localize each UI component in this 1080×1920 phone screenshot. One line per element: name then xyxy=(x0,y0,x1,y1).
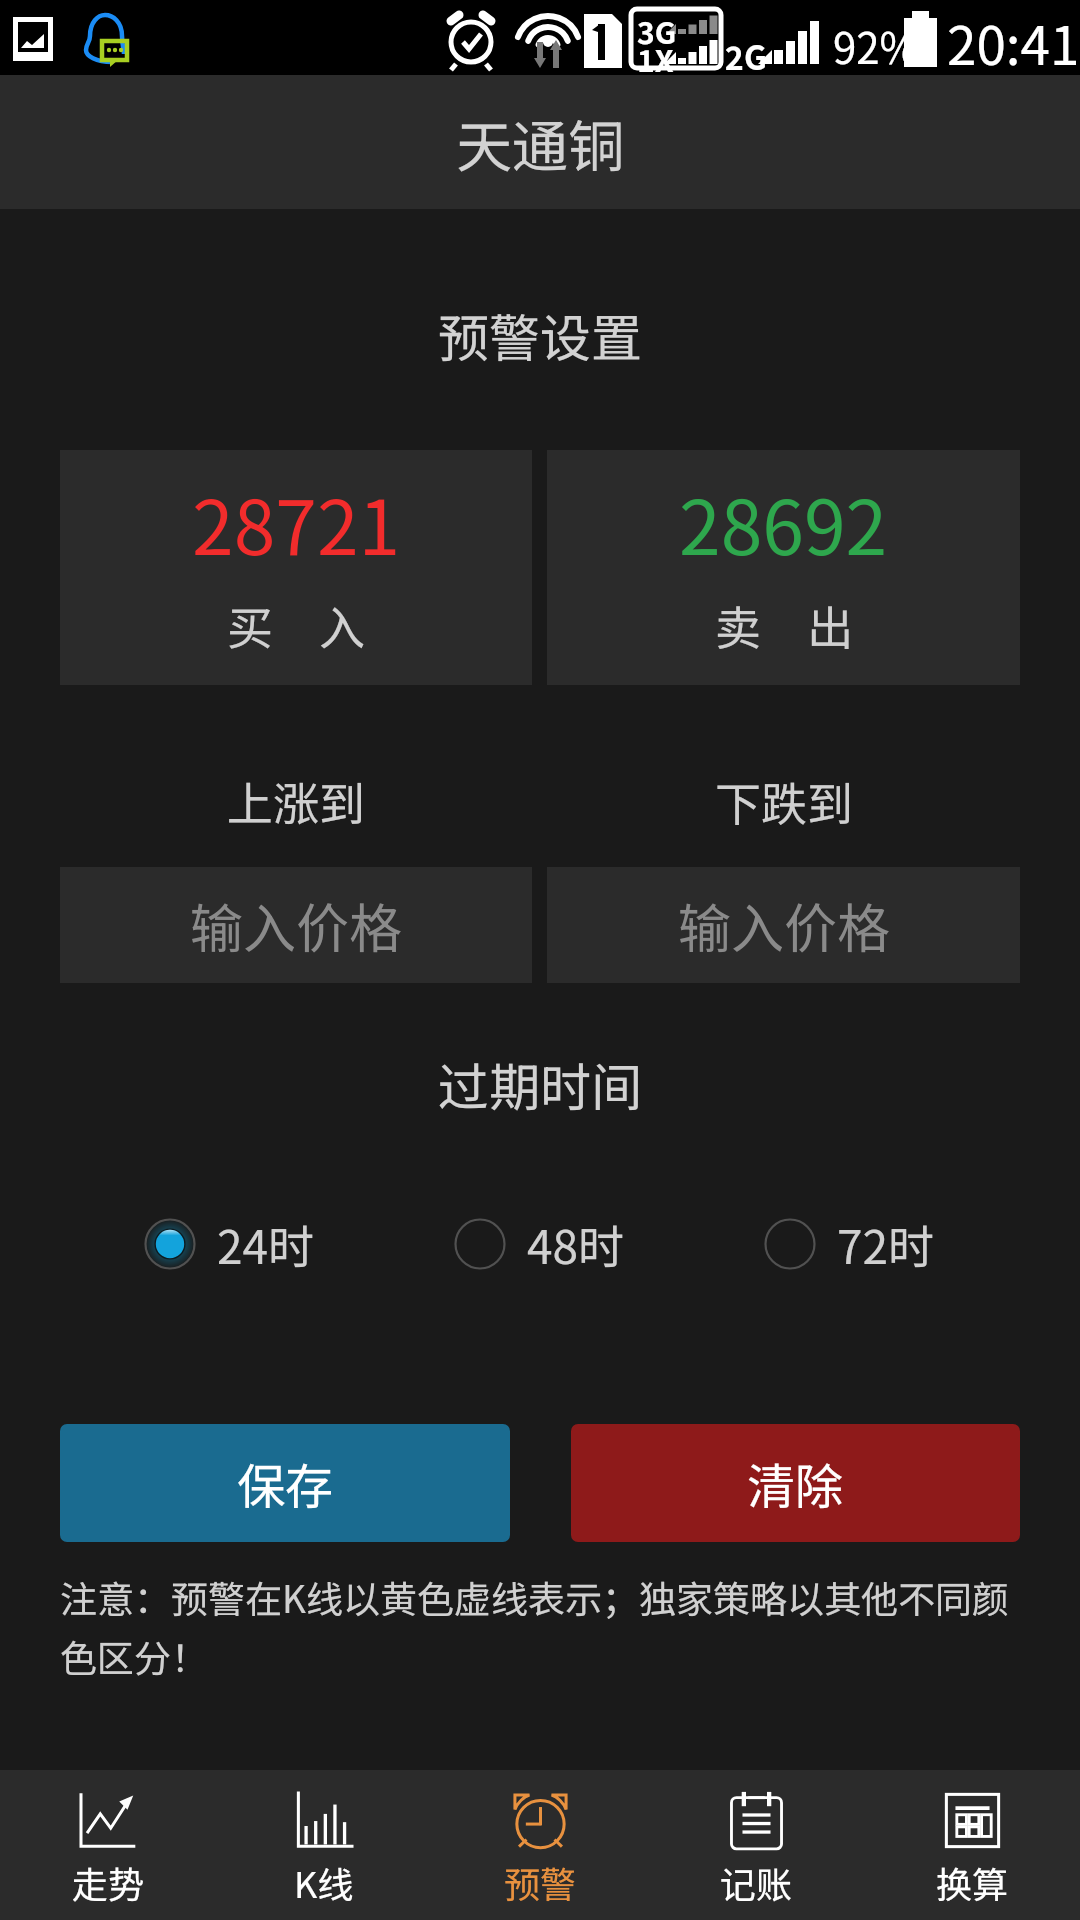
button[interactable]: 清除 xyxy=(571,1424,1020,1542)
staticText: 1X xyxy=(637,37,674,80)
staticText: 3G xyxy=(637,9,677,52)
staticText: 换算 xyxy=(936,1856,1009,1908)
button[interactable]: 输入价格 xyxy=(547,867,1020,983)
staticText: 上涨到 xyxy=(227,768,365,835)
staticText: 72时 xyxy=(837,1211,935,1278)
staticText: 天通铜 xyxy=(456,102,624,183)
button[interactable]: 48时 xyxy=(449,1204,759,1284)
button[interactable]: 走势 xyxy=(0,1770,216,1920)
staticText: 清除 xyxy=(747,1448,844,1518)
staticText: 20:41 xyxy=(947,4,1080,79)
staticText: 28721 xyxy=(192,468,401,577)
button[interactable]: 72时 xyxy=(759,1204,1069,1284)
staticText: 记账 xyxy=(720,1856,793,1908)
button[interactable]: 换算 xyxy=(864,1770,1080,1920)
staticText: 输入价格 xyxy=(190,887,402,964)
staticText: 卖 出 xyxy=(715,592,853,659)
staticText: 输入价格 xyxy=(678,887,890,964)
staticText: 2G xyxy=(725,33,767,79)
staticText: 24时 xyxy=(217,1211,315,1278)
staticText: 买 入 xyxy=(227,592,365,659)
button[interactable]: 预警 xyxy=(432,1770,648,1920)
button[interactable]: 28721 xyxy=(60,450,532,685)
staticText: 下跌到 xyxy=(715,768,853,835)
staticText: 预警 xyxy=(504,1856,577,1908)
button[interactable]: K线 xyxy=(216,1770,432,1920)
staticText: 预警设置 xyxy=(438,298,643,372)
button[interactable]: 28692 xyxy=(547,450,1020,685)
button[interactable]: 记账 xyxy=(648,1770,864,1920)
staticText: 48时 xyxy=(527,1211,625,1278)
staticText: 92% xyxy=(833,15,919,76)
staticText: 走势 xyxy=(72,1856,145,1908)
staticText: 保存 xyxy=(237,1448,334,1518)
staticText: 注意：预警在K线以黄色虚线表示；独家策略以其他不同颜色区分！ xyxy=(60,1570,1020,1683)
button[interactable]: 输入价格 xyxy=(60,867,532,983)
staticText: 过期时间 xyxy=(438,1047,643,1121)
button[interactable]: 保存 xyxy=(60,1424,510,1542)
button[interactable]: 24时 xyxy=(139,1204,449,1284)
staticText: 28692 xyxy=(679,468,888,577)
staticText: K线 xyxy=(294,1856,354,1908)
